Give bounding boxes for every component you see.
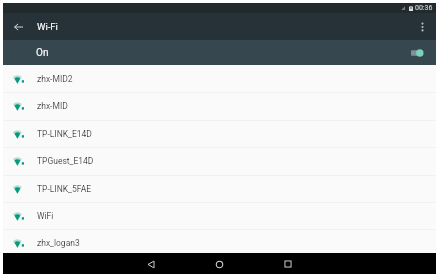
staticText: zhx-MID bbox=[37, 101, 68, 111]
staticText: zhx-MID2 bbox=[37, 74, 73, 84]
button[interactable]: TP-LINK_E14D bbox=[3, 120, 436, 147]
button[interactable]: TPGuest_E14D bbox=[3, 147, 436, 174]
button[interactable]: Wi-Fi on/off switch bbox=[411, 47, 425, 59]
staticText: zhx_logan3 bbox=[37, 238, 80, 248]
staticText: TP-LINK_5FAE bbox=[37, 184, 92, 194]
button[interactable]: Navigate up bbox=[8, 17, 28, 37]
button[interactable]: zhx-MID bbox=[3, 92, 436, 119]
button[interactable]: Back bbox=[142, 255, 160, 273]
button[interactable]: Home bbox=[210, 255, 228, 273]
button[interactable]: On bbox=[3, 40, 436, 65]
button[interactable]: More options bbox=[412, 17, 432, 37]
staticText: TPGuest_E14D bbox=[37, 156, 94, 166]
button[interactable]: zhx_logan3 bbox=[3, 229, 436, 256]
button[interactable]: Recents bbox=[279, 255, 297, 273]
staticText: WiFi bbox=[37, 211, 54, 221]
staticText: On bbox=[36, 47, 49, 59]
staticText: 00:36 bbox=[415, 4, 433, 12]
button[interactable]: TP-LINK_5FAE bbox=[3, 175, 436, 202]
staticText: Wi-Fi bbox=[37, 21, 58, 32]
button[interactable]: zhx-MID2 bbox=[3, 65, 436, 92]
staticText: TP-LINK_E14D bbox=[37, 129, 92, 139]
button[interactable]: WiFi bbox=[3, 202, 436, 229]
